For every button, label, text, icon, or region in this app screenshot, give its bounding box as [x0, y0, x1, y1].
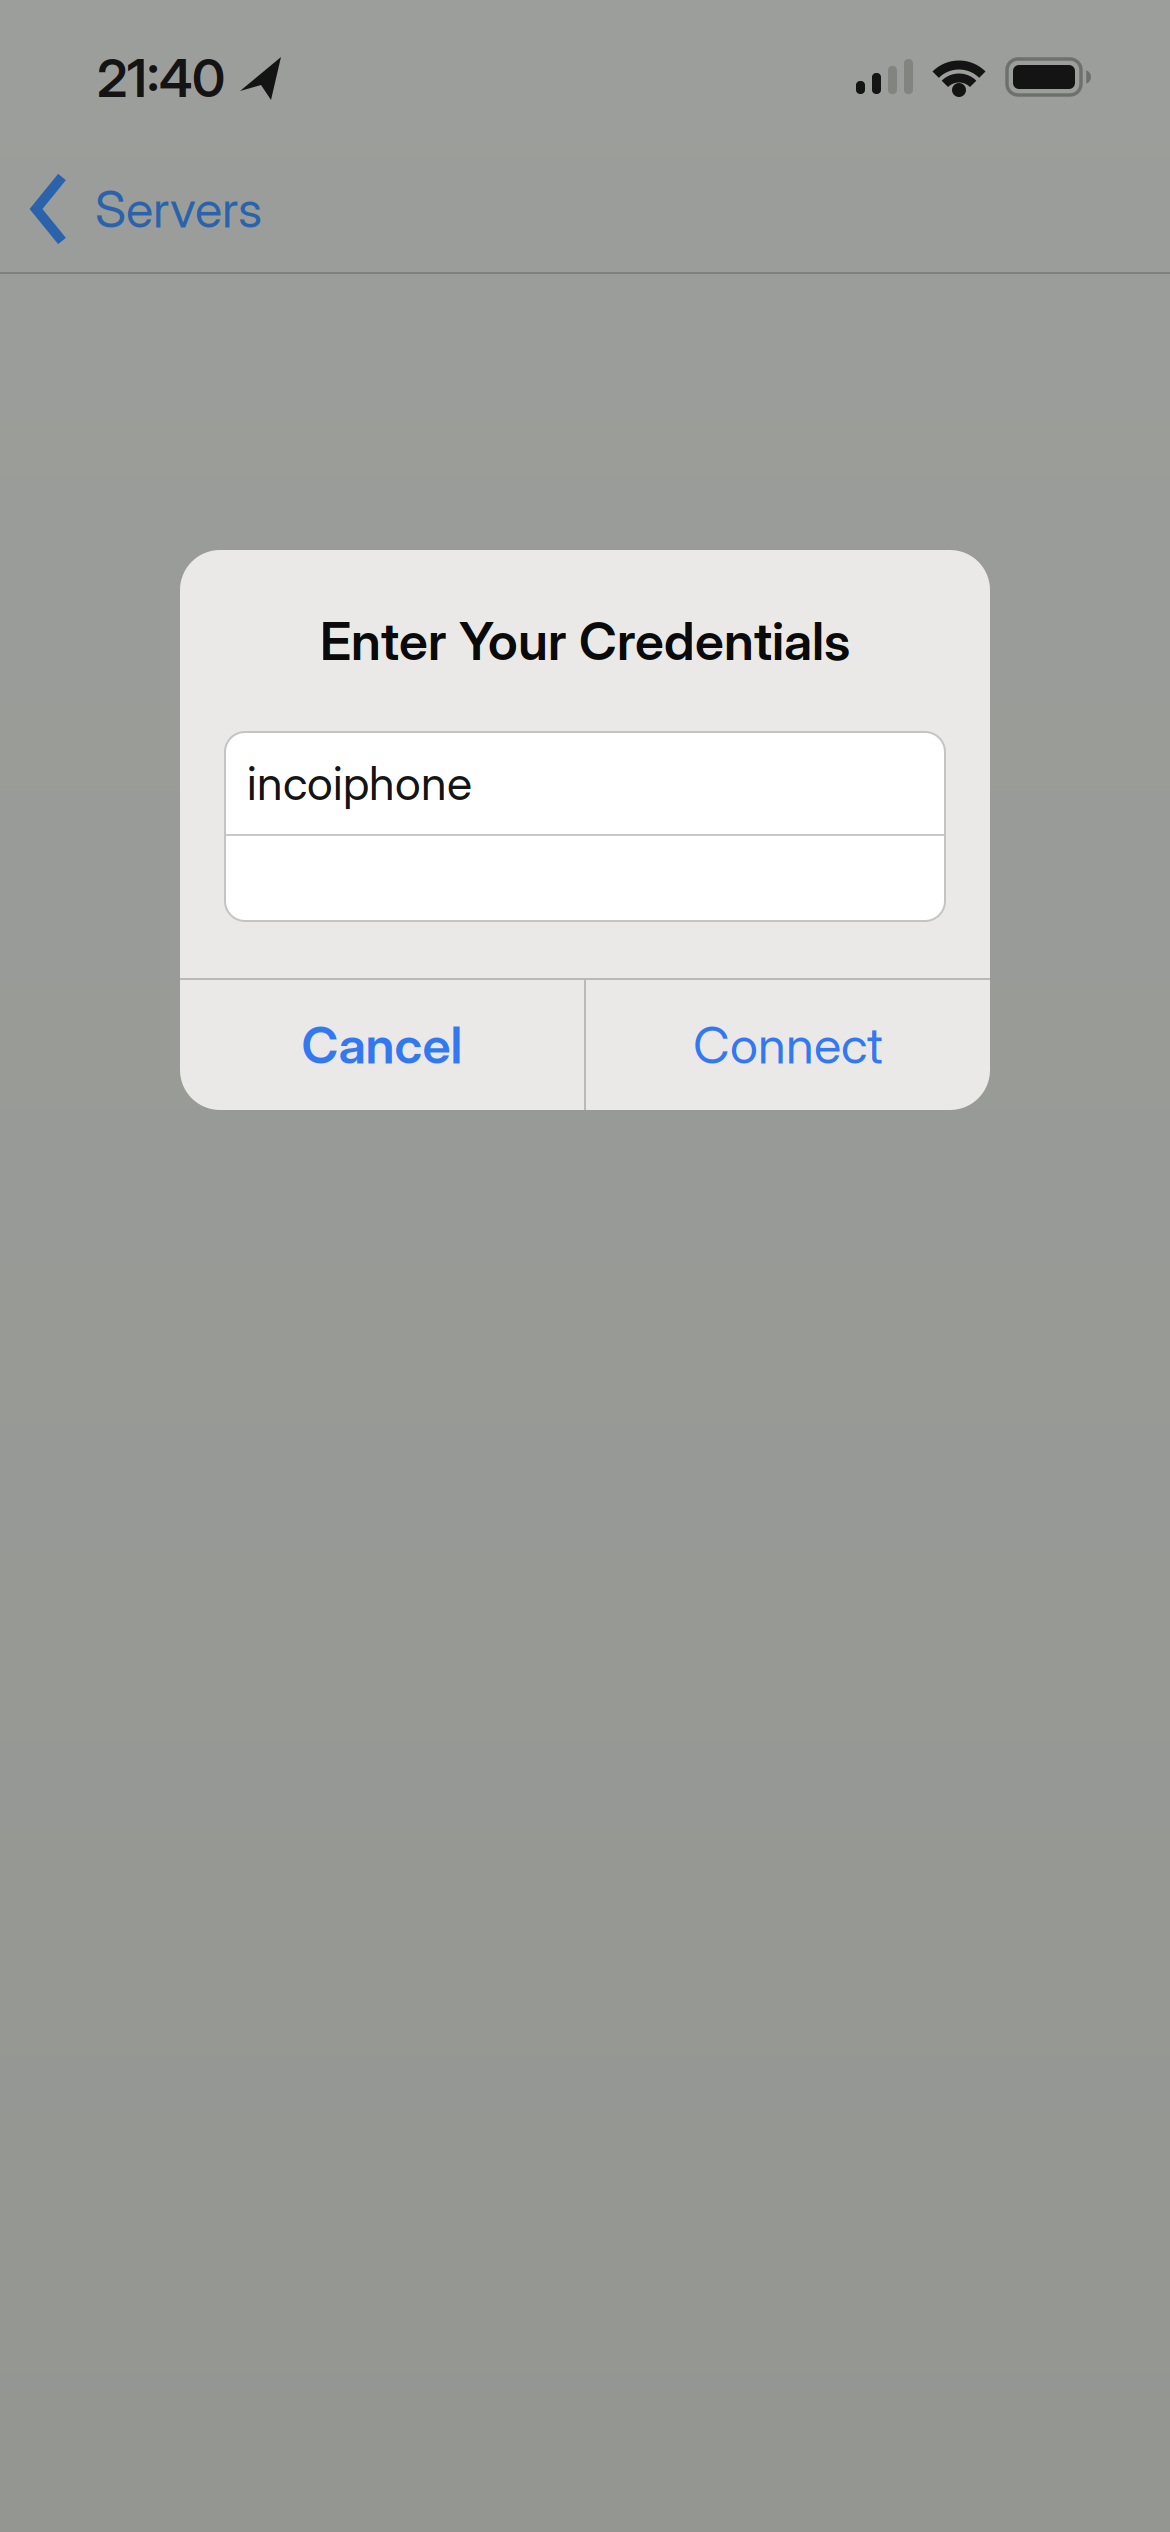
- staticText: Connect: [693, 1015, 883, 1075]
- button[interactable]: Back to Servers: [0, 143, 340, 275]
- staticText: Enter Your Credentials: [320, 610, 850, 672]
- staticText: 21:40: [97, 47, 225, 109]
- button[interactable]: Connect: [586, 980, 990, 1110]
- staticText: Cancel: [301, 1015, 462, 1075]
- button[interactable]: Cancel: [180, 980, 584, 1110]
- staticText: Servers: [95, 179, 262, 239]
- staticText: incoiphone: [247, 755, 472, 811]
